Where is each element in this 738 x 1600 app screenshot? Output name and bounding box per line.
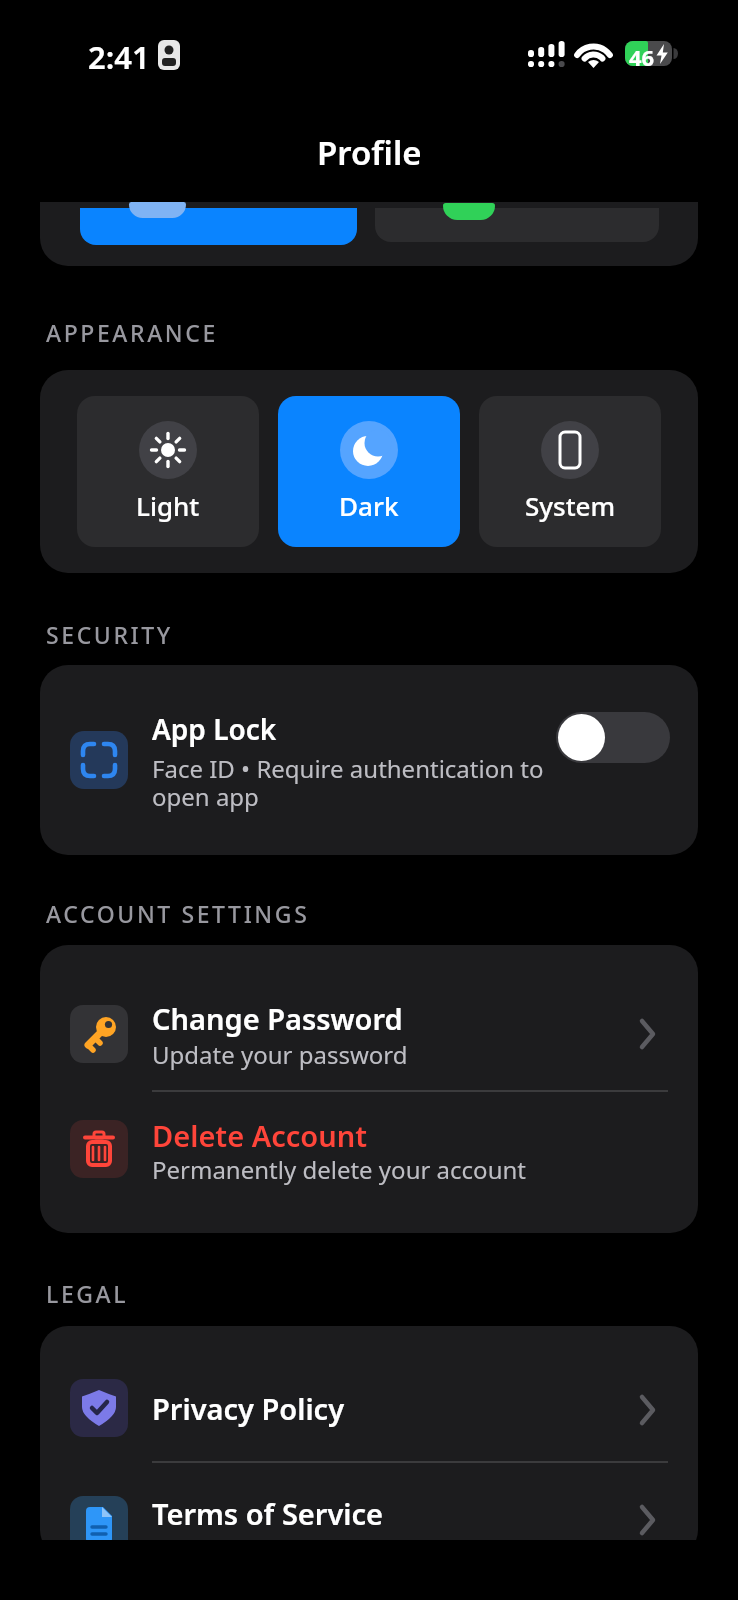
staticText: open app (152, 780, 259, 813)
button[interactable] (40, 1326, 698, 1461)
button[interactable] (278, 396, 460, 547)
staticText: 46 (629, 42, 655, 72)
staticText: APPEARANCE (46, 317, 218, 348)
staticText: System (525, 488, 616, 522)
staticText: Light (136, 488, 200, 522)
staticText: Permanently delete your account (152, 1153, 526, 1186)
button[interactable] (40, 665, 698, 855)
button[interactable] (479, 396, 661, 547)
button[interactable] (77, 396, 259, 547)
button[interactable] (375, 208, 659, 242)
button[interactable] (556, 712, 670, 763)
button[interactable] (40, 1091, 698, 1233)
button[interactable] (80, 208, 357, 245)
staticText: Update your password (152, 1038, 408, 1071)
button[interactable] (40, 1463, 698, 1558)
button[interactable] (40, 945, 698, 1089)
staticText: 2:41 (88, 36, 150, 78)
staticText: SECURITY (46, 619, 173, 650)
staticText: App Lock (152, 710, 277, 748)
staticText: Change Password (152, 999, 403, 1038)
staticText: Dark (339, 488, 399, 522)
staticText: LEGAL (46, 1278, 129, 1309)
staticText: Delete Account (152, 1116, 367, 1155)
staticText: Profile (317, 130, 422, 175)
staticText: Privacy Policy (152, 1389, 345, 1428)
staticText: Face ID • Require authentication to (152, 752, 544, 785)
staticText: Terms of Service (152, 1494, 383, 1533)
staticText: ACCOUNT SETTINGS (46, 898, 310, 929)
